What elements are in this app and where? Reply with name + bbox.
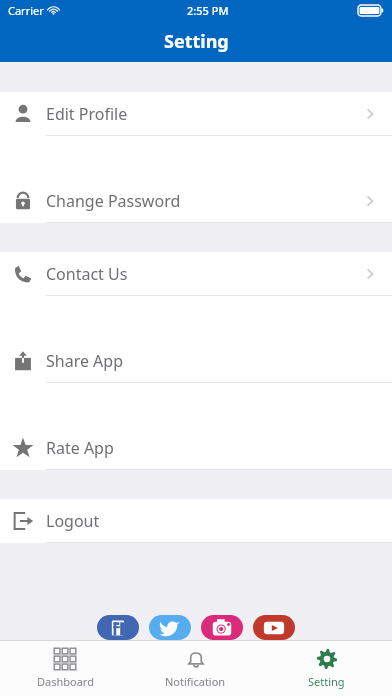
staticText: 2:55 PM: [187, 3, 229, 18]
staticText: Setting: [308, 674, 345, 689]
button[interactable]: Contact Us: [0, 252, 392, 296]
staticText: Share App: [46, 350, 124, 372]
staticText: Notification: [165, 674, 226, 689]
button[interactable]: Logout: [0, 499, 392, 543]
button[interactable]: Setting: [261, 648, 392, 689]
button[interactable]: YouTube: [253, 615, 295, 640]
button[interactable]: Notification: [130, 648, 261, 689]
button[interactable]: Change Password: [0, 179, 392, 223]
button[interactable]: Facebook: [97, 615, 139, 640]
staticText: Rate App: [46, 437, 114, 459]
button[interactable]: Instagram: [201, 615, 243, 640]
staticText: Dashboard: [37, 674, 94, 689]
staticText: Setting: [164, 29, 229, 54]
staticText: Logout: [46, 510, 100, 532]
button[interactable]: Share App: [0, 339, 392, 383]
button[interactable]: Dashboard: [0, 648, 130, 689]
button[interactable]: Twitter: [149, 615, 191, 640]
staticText: Change Password: [46, 190, 181, 212]
staticText: Contact Us: [46, 263, 128, 285]
button[interactable]: Edit Profile: [0, 92, 392, 136]
staticText: Edit Profile: [46, 103, 128, 125]
staticText: Carrier: [8, 3, 44, 18]
button[interactable]: Rate App: [0, 426, 392, 470]
